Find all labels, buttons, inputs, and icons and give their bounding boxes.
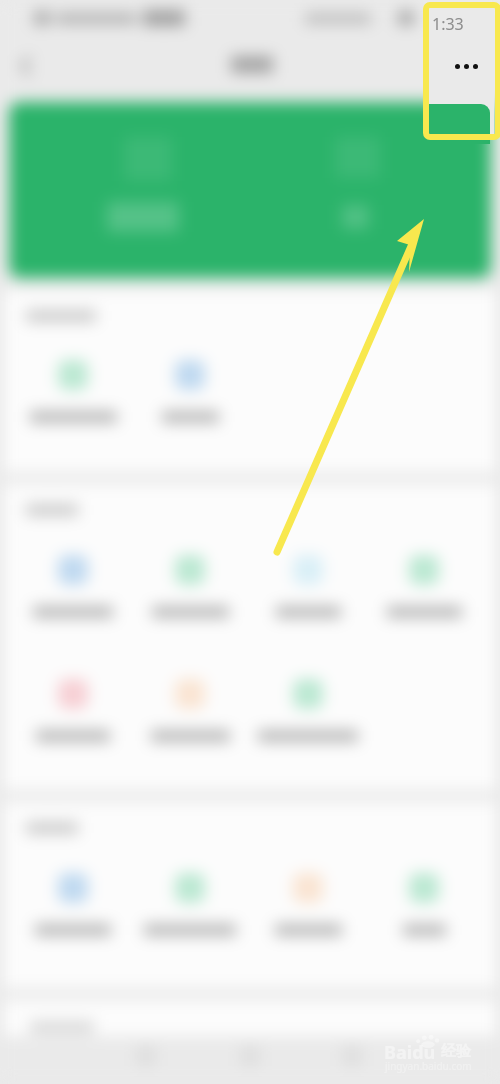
button[interactable] <box>21 673 125 746</box>
button[interactable] <box>138 867 242 940</box>
button[interactable] <box>9 102 491 278</box>
button[interactable] <box>372 867 476 940</box>
button[interactable] <box>372 549 476 622</box>
staticText: 经验 <box>441 1042 471 1061</box>
button[interactable]: More options <box>451 57 485 75</box>
button[interactable] <box>21 867 125 940</box>
button[interactable] <box>138 354 242 427</box>
button[interactable] <box>256 673 360 746</box>
button[interactable] <box>21 354 125 427</box>
button[interactable] <box>138 673 242 746</box>
button[interactable]: Tab 3 <box>297 1036 407 1084</box>
button[interactable] <box>138 549 242 622</box>
button[interactable]: Back <box>8 48 44 84</box>
button[interactable] <box>256 867 360 940</box>
button[interactable]: More options <box>450 52 478 80</box>
button[interactable] <box>21 549 125 622</box>
staticText: Baidu <box>384 1040 436 1065</box>
button[interactable] <box>256 549 360 622</box>
staticText: 1:33 <box>432 13 464 35</box>
